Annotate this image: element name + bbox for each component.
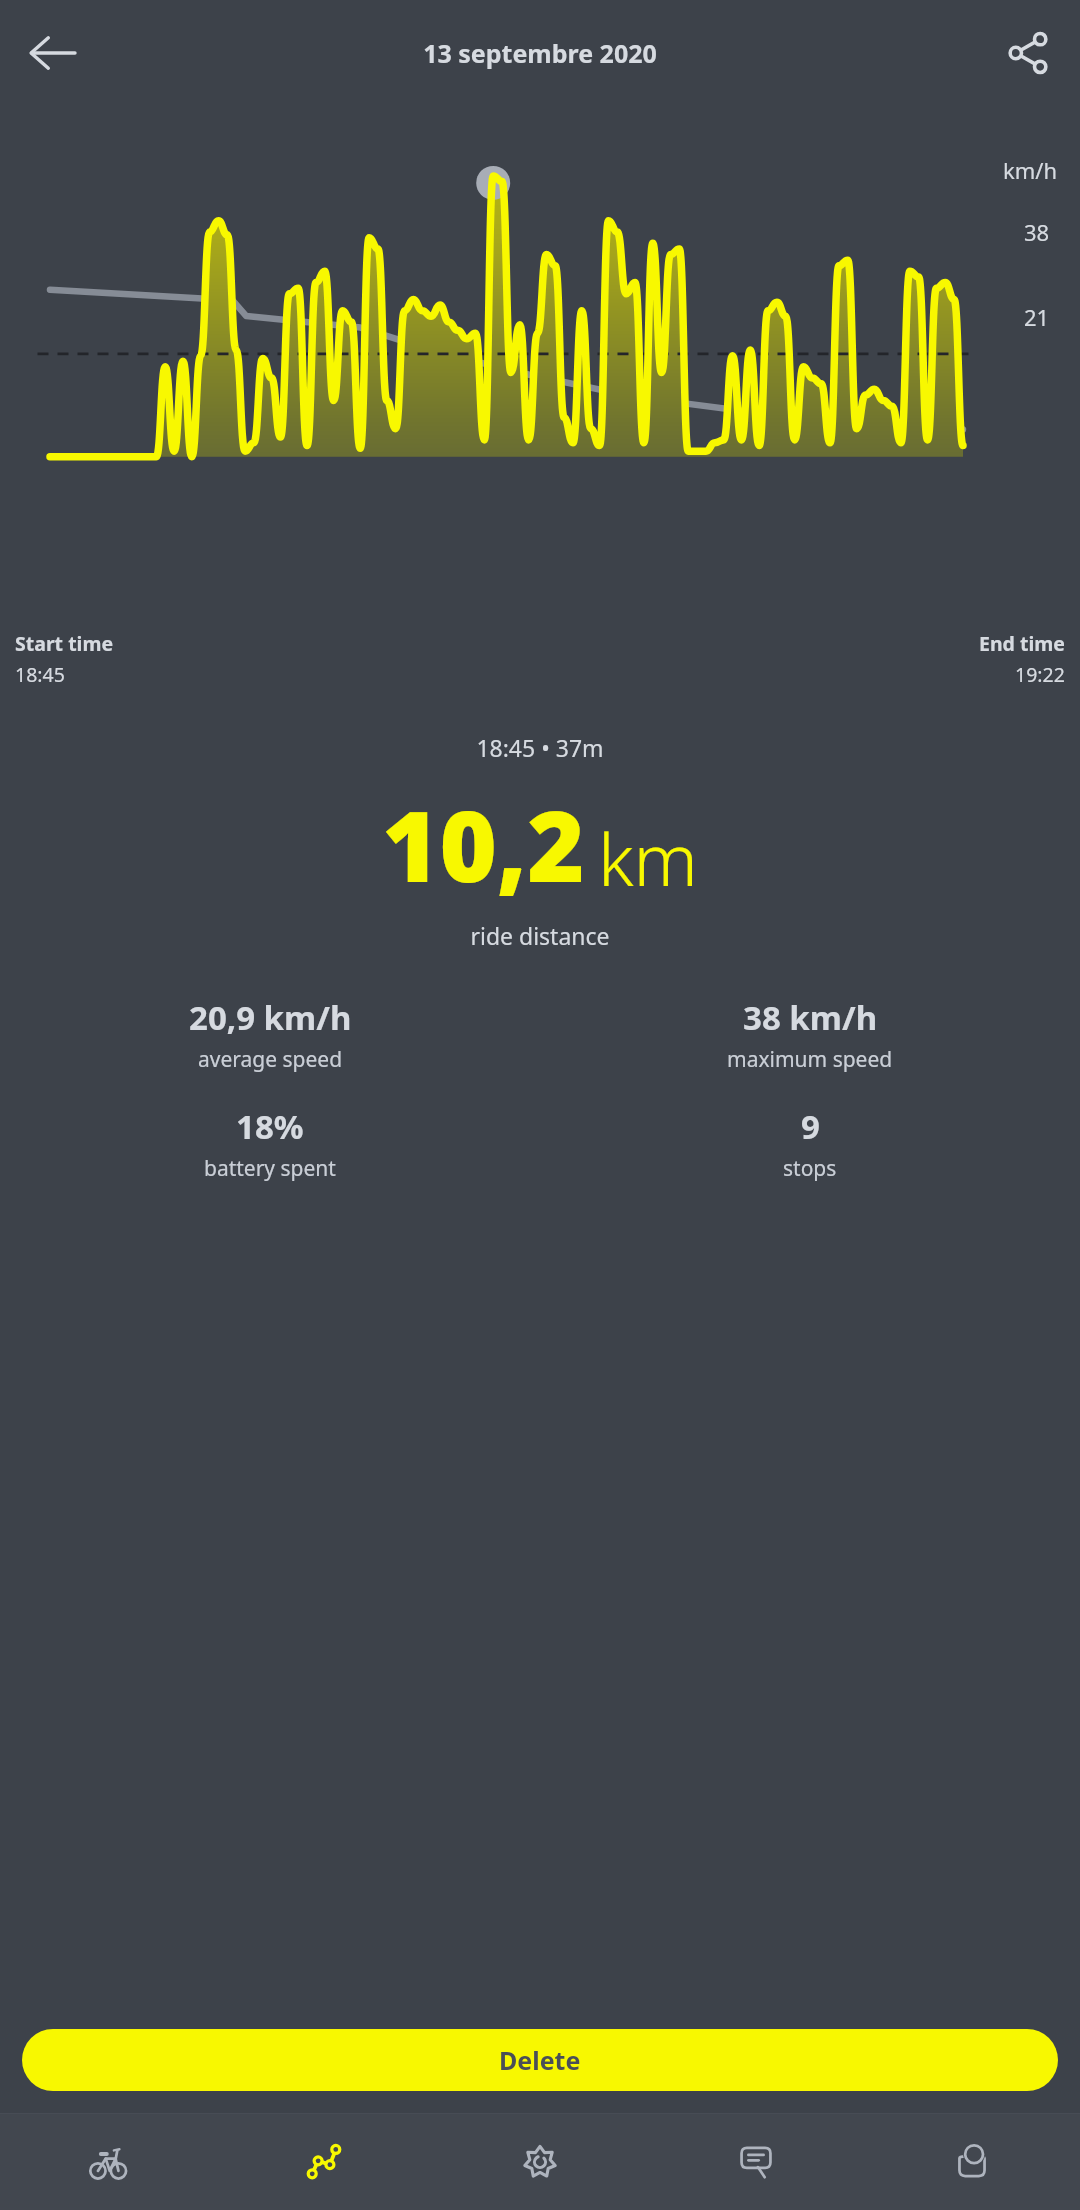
button[interactable]: Profile — [864, 2113, 1080, 2210]
staticText: maximum speed — [727, 1045, 893, 1074]
staticText: 18:45 • 37m — [0, 732, 1080, 763]
staticText: km — [598, 809, 698, 907]
button[interactable]: Rides — [0, 2113, 216, 2210]
staticText: 19:22 — [1015, 661, 1065, 688]
staticText: Delete — [499, 2043, 581, 2077]
staticText: Start time — [15, 630, 114, 657]
staticText: 10,2 — [382, 777, 585, 910]
staticText: stops — [783, 1154, 837, 1183]
button[interactable]: Back — [12, 13, 92, 93]
staticText: 18:45 — [15, 661, 65, 688]
staticText: ride distance — [0, 920, 1080, 951]
staticText: 38 km/h — [743, 995, 878, 1040]
staticText: km/h — [1003, 155, 1058, 185]
staticText: 18% — [236, 1104, 304, 1149]
button[interactable]: Share — [988, 13, 1068, 93]
staticText: 21 — [1024, 302, 1050, 332]
staticText: average speed — [198, 1045, 343, 1074]
staticText: 13 septembre 2020 — [423, 36, 657, 70]
staticText: 20,9 km/h — [189, 995, 352, 1040]
staticText: 9 — [801, 1104, 820, 1149]
button[interactable]: Delete — [22, 2029, 1058, 2091]
staticText: End time — [979, 630, 1065, 657]
button[interactable]: Messages — [648, 2113, 864, 2210]
staticText: battery spent — [204, 1154, 336, 1183]
button[interactable]: Routes — [216, 2113, 432, 2210]
button[interactable]: Settings — [432, 2113, 648, 2210]
staticText: 38 — [1024, 217, 1050, 247]
